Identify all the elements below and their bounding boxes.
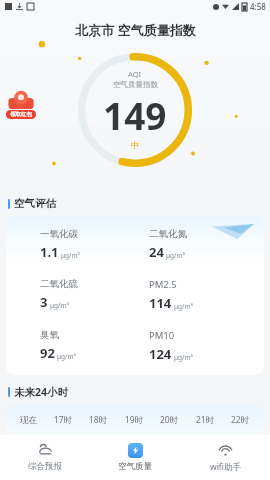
staticText: 4:58 — [250, 1, 266, 12]
staticText: 18时 — [89, 414, 108, 426]
staticText: μg/m³ — [174, 302, 193, 311]
staticText: PM2.5 — [149, 278, 177, 291]
staticText: 二氧化氮 — [149, 228, 187, 240]
staticText: 3 — [40, 293, 48, 311]
button[interactable]: 综合预报 — [0, 435, 90, 480]
other: 空气质量 — [128, 443, 143, 458]
staticText: 124 — [149, 345, 172, 363]
other: wifi助手 — [218, 443, 233, 458]
staticText: μg/m³ — [61, 251, 80, 260]
staticText: 空气质量 — [118, 461, 152, 472]
staticText: wifi助手 — [210, 461, 241, 473]
staticText: PM10 — [149, 329, 175, 342]
staticText: 综合预报 — [28, 461, 62, 472]
staticText: AQI — [128, 69, 142, 79]
staticText: 1.1 — [40, 243, 59, 261]
staticText: 92 — [40, 344, 55, 362]
staticText: 19时 — [125, 414, 144, 426]
button[interactable]: 现在 — [6, 405, 264, 435]
staticText: 21时 — [196, 414, 215, 426]
staticText: μg/m³ — [166, 251, 185, 260]
staticText: 臭氧 — [40, 329, 59, 341]
staticText: μg/m³ — [174, 353, 193, 362]
staticText: 114 — [149, 294, 172, 312]
staticText: 领取红包 — [10, 111, 32, 118]
staticText: 中 — [131, 140, 140, 151]
staticText: 一氧化碳 — [40, 228, 78, 240]
staticText: 17时 — [54, 414, 73, 426]
staticText: μg/m³ — [57, 352, 76, 361]
other: 综合预报 — [38, 443, 53, 458]
staticText: 二氧化硫 — [40, 278, 78, 290]
staticText: 北京市 空气质量指数 — [75, 21, 196, 39]
button[interactable]: 空气质量 — [90, 435, 180, 480]
button[interactable]: 一氧化碳 — [6, 216, 264, 375]
staticText: 22时 — [231, 414, 250, 426]
staticText: 24 — [149, 243, 164, 261]
staticText: 未来24小时 — [14, 385, 69, 399]
staticText: μg/m³ — [50, 301, 69, 310]
staticText: 149 — [103, 90, 167, 140]
staticText: 现在 — [20, 415, 37, 426]
staticText: 20时 — [160, 414, 179, 426]
button[interactable]: 领取红包 — [3, 86, 39, 122]
button[interactable]: wifi助手 — [180, 435, 270, 480]
staticText: 空气评估 — [14, 197, 56, 210]
staticText: 空气质量指数 — [113, 80, 158, 89]
